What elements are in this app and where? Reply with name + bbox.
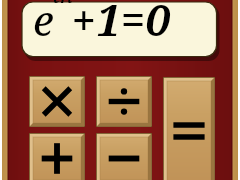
button[interactable]: Divide bbox=[96, 76, 152, 127]
button[interactable]: Plus bbox=[29, 133, 85, 180]
button[interactable] bbox=[22, 2, 219, 60]
button[interactable]: Equals bbox=[163, 77, 215, 180]
button[interactable]: Multiply bbox=[29, 76, 85, 127]
button[interactable]: Minus bbox=[96, 133, 152, 180]
